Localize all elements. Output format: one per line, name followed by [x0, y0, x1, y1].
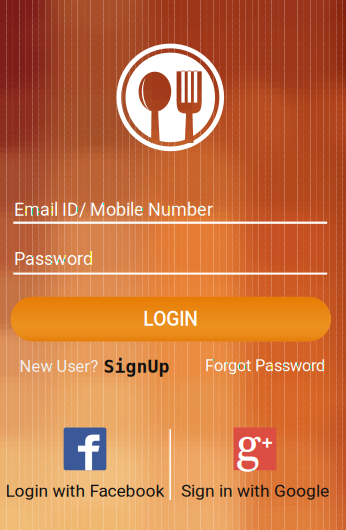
button[interactable]: Login with Facebook	[0, 431, 176, 498]
button[interactable]: Forgot Password	[205, 356, 325, 375]
staticText: Login with Facebook	[5, 481, 164, 501]
button[interactable]: g	[170, 430, 340, 498]
staticText: Sign in with Google	[181, 481, 329, 501]
button[interactable]: LOGIN	[11, 297, 331, 341]
staticText: SignUp	[104, 356, 170, 377]
staticText: Email ID/ Mobile Number	[14, 199, 213, 220]
button[interactable]: New User?	[20, 356, 170, 377]
staticText: +	[262, 429, 273, 455]
staticText: Password	[14, 248, 93, 269]
staticText: LOGIN	[143, 308, 198, 330]
staticText: Forgot Password	[205, 356, 325, 375]
staticText: New User?	[20, 357, 99, 376]
staticText: g	[236, 415, 261, 477]
